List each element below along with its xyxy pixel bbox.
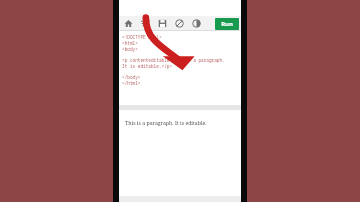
staticText: </html> <box>122 80 141 86</box>
button[interactable]: Clear <box>173 17 186 30</box>
staticText: Run <box>221 20 233 28</box>
button[interactable]: Run <box>215 18 239 30</box>
staticText: It is editable.</p> <box>122 63 173 69</box>
staticText: </body> <box>122 74 141 80</box>
button[interactable]: Theme <box>190 17 203 30</box>
staticText: <p contenteditable>This is a paragraph. <box>122 57 225 63</box>
button[interactable]: Home <box>122 17 135 30</box>
button[interactable]: Menu <box>139 17 152 30</box>
staticText: <!DOCTYPE html> <box>122 34 162 40</box>
staticText: <html> <box>122 40 138 46</box>
button[interactable]: Save <box>156 17 169 30</box>
staticText: <body> <box>122 46 138 52</box>
staticText: This is a paragraph. It is editable. <box>125 119 207 126</box>
